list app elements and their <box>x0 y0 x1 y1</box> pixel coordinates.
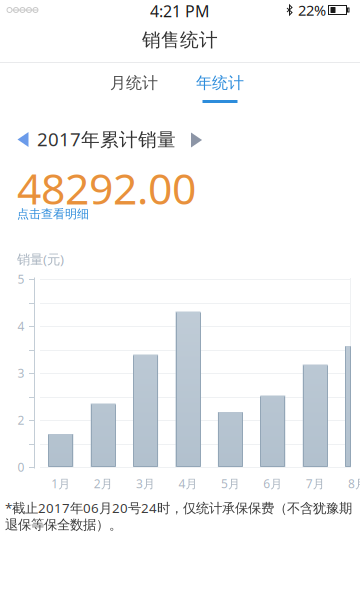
staticText: 3 <box>17 365 24 381</box>
button[interactable]: 下一年 <box>185 126 208 153</box>
staticText: 22% <box>298 0 326 20</box>
staticText: 0 <box>17 459 24 475</box>
staticText: 2 <box>17 412 24 428</box>
button[interactable]: 月统计 <box>96 63 172 103</box>
staticText: 月统计 <box>110 73 158 93</box>
staticText: 5月 <box>221 475 240 491</box>
button[interactable]: 上一年 <box>11 126 34 153</box>
button[interactable]: 48292.00 <box>17 169 217 223</box>
staticText: 年统计 <box>196 73 244 93</box>
staticText: 5 <box>17 271 24 287</box>
staticText: 3月 <box>136 475 155 491</box>
staticText: 8月 <box>348 475 360 491</box>
staticText: 48292.00 <box>17 160 196 216</box>
staticText: 2月 <box>94 475 113 491</box>
staticText: 销售统计 <box>142 28 218 51</box>
button[interactable]: 年统计 <box>182 63 258 105</box>
staticText: 2017年累计销量 <box>37 127 176 151</box>
staticText: 4 <box>17 318 24 334</box>
staticText: 6月 <box>263 475 282 491</box>
staticText: 7月 <box>306 475 325 491</box>
staticText: 4月 <box>178 475 197 491</box>
staticText: 4:21 PM <box>150 0 210 22</box>
staticText: 1月 <box>51 475 70 491</box>
staticText: *截止2017年06月20号24时，仅统计承保保费（不含犹豫期退保等保全数据）。 <box>5 499 352 533</box>
staticText: 销量(元) <box>17 250 64 268</box>
staticText: 点击查看明细 <box>17 207 89 221</box>
